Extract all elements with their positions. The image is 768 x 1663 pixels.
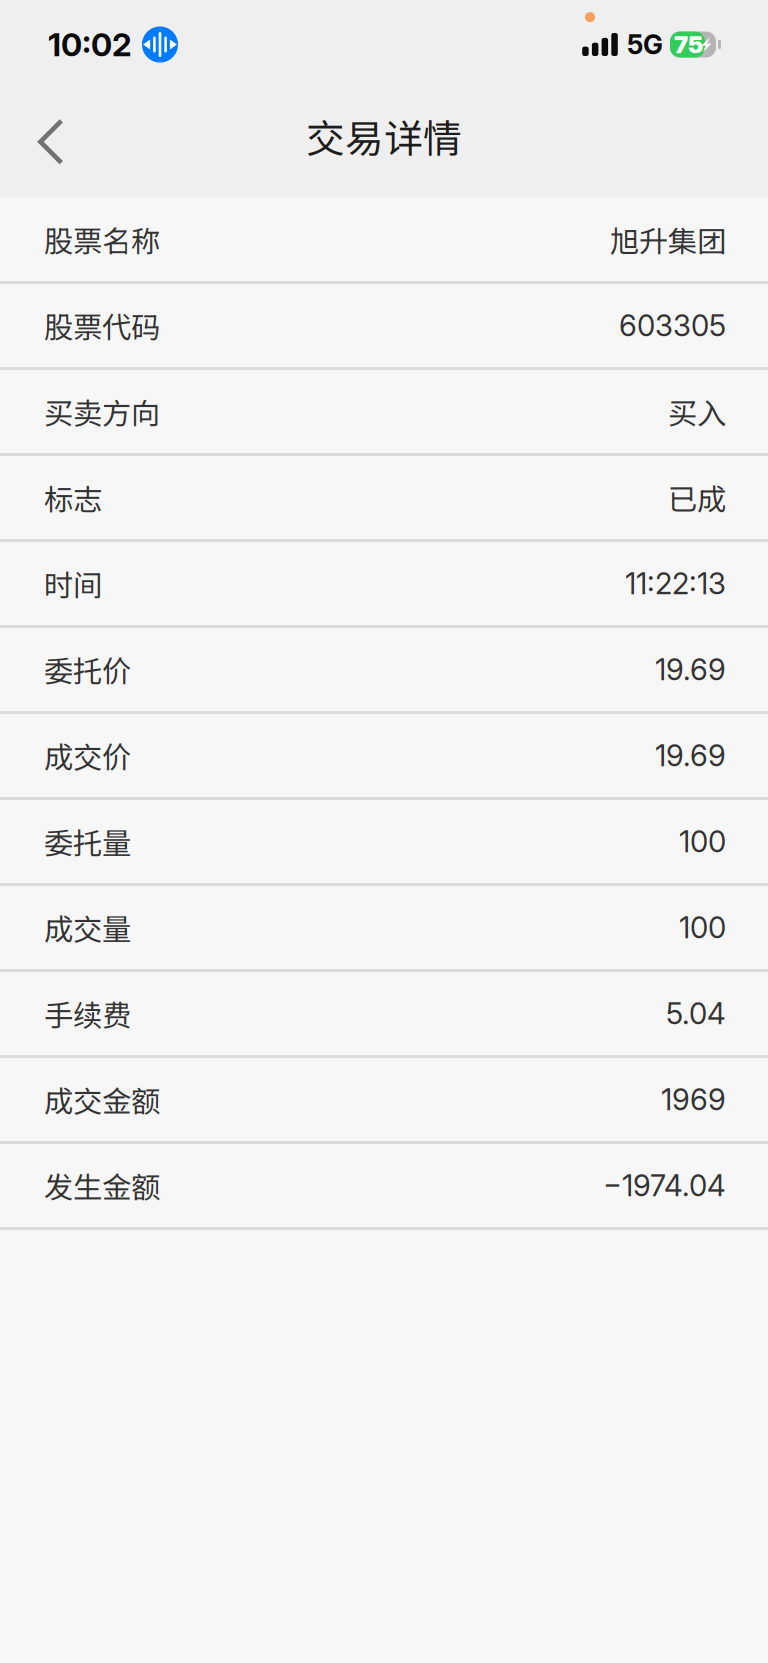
staticText: 75	[674, 30, 703, 59]
staticText: 委托价	[44, 648, 131, 691]
staticText: 1969	[661, 1082, 726, 1117]
staticText: 5.04	[666, 996, 726, 1031]
staticText: 5G	[627, 28, 663, 61]
staticText: 委托量	[44, 820, 131, 863]
staticText: 买入	[668, 390, 726, 433]
staticText: 100	[679, 910, 726, 945]
staticText: 交易详情	[306, 108, 462, 164]
staticText: 19.69	[655, 738, 726, 773]
staticText: 标志	[44, 476, 102, 519]
staticText: 10:02	[48, 25, 132, 64]
staticText: 100	[679, 824, 726, 859]
staticText: −1974.04	[603, 1168, 726, 1203]
button[interactable]: Back	[0, 88, 94, 183]
staticText: 股票名称	[44, 218, 160, 261]
staticText: 股票代码	[44, 304, 160, 347]
staticText: 11:22:13	[625, 566, 726, 601]
staticText: 603305	[619, 308, 726, 343]
staticText: 成交价	[44, 734, 131, 777]
staticText: 手续费	[44, 992, 131, 1035]
staticText: 时间	[44, 562, 102, 605]
staticText: 成交量	[44, 906, 131, 949]
staticText: 买卖方向	[44, 390, 160, 433]
staticText: 已成	[668, 476, 726, 519]
staticText: 成交金额	[44, 1078, 160, 1121]
staticText: 发生金额	[44, 1164, 160, 1207]
staticText: 19.69	[655, 652, 726, 687]
staticText: 旭升集团	[610, 218, 726, 261]
